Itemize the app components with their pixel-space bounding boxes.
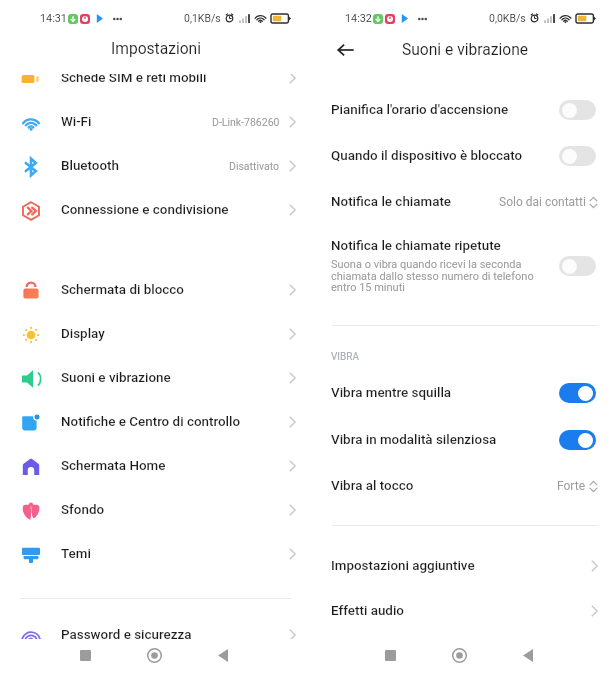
staticText: 14:31 [40, 12, 67, 25]
staticText: Pianifica l'orario d'accensione [331, 102, 509, 118]
staticText: Quando il dispositivo è bloccato [331, 148, 523, 164]
staticText: 0,0KB/s [489, 12, 526, 24]
staticText: Suoni e vibrazione [402, 41, 529, 59]
button[interactable]: Vibra al tocco [305, 463, 610, 509]
staticText: VIBRA [331, 351, 360, 363]
button[interactable]: Home [138, 639, 170, 671]
button[interactable]: Impostazioni aggiuntive [305, 543, 610, 588]
button[interactable]: Recents [374, 639, 406, 671]
button[interactable]: Toggle on [559, 430, 596, 450]
button[interactable]: Effetti audio [305, 588, 610, 633]
staticText: Suona o vibra quando ricevi la seconda c… [331, 258, 534, 294]
staticText: Schede SIM e reti mobili [61, 74, 207, 86]
staticText: 0,1KB/s [184, 12, 221, 24]
staticText: Effetti audio [331, 603, 404, 619]
staticText: Sfondo [61, 502, 105, 518]
staticText: Schermata Home [61, 458, 166, 474]
button[interactable]: Toggle off [559, 100, 596, 120]
button[interactable]: Wi-Fi [0, 100, 305, 144]
staticText: Bluetooth [61, 158, 119, 174]
staticText: Schermata di blocco [61, 282, 184, 298]
staticText: Impostazioni aggiuntive [331, 558, 475, 574]
staticText: Notifica le chiamate [331, 194, 452, 210]
button[interactable]: Display [0, 312, 305, 356]
staticText: Vibra mentre squilla [331, 385, 452, 401]
button[interactable]: Bluetooth [0, 144, 305, 188]
button[interactable]: Schermata di blocco [0, 268, 305, 312]
button[interactable]: Back [329, 34, 361, 66]
button[interactable]: Toggle on [559, 383, 596, 403]
staticText: Disattivato [229, 160, 280, 172]
staticText: Wi-Fi [61, 114, 92, 130]
button[interactable]: Suoni e vibrazione [0, 356, 305, 400]
staticText: Notifiche e Centro di controllo [61, 414, 241, 430]
button[interactable]: Home [443, 639, 475, 671]
button[interactable]: Sfondo [0, 488, 305, 532]
staticText: D-Link-786260 [212, 116, 280, 128]
button[interactable]: Password e sicurezza [0, 613, 305, 641]
button[interactable]: Pianifica l'orario d'accensione [305, 87, 610, 133]
button[interactable]: Back [207, 639, 239, 671]
button[interactable]: Notifiche e Centro di controllo [0, 400, 305, 444]
button[interactable]: Notifica le chiamate [305, 179, 610, 225]
button[interactable]: Vibra in modalità silenziosa [305, 416, 610, 463]
button[interactable]: Quando il dispositivo è bloccato [305, 133, 610, 179]
staticText: Solo dai contatti [499, 195, 586, 209]
staticText: Connessione e condivisione [61, 202, 229, 218]
staticText: 14:32 [345, 12, 372, 25]
button[interactable]: Schermata Home [0, 444, 305, 488]
staticText: Notifica le chiamate ripetute [331, 238, 501, 254]
button[interactable]: Toggle off [559, 146, 596, 166]
staticText: Impostazioni [111, 40, 202, 58]
button[interactable]: Connessione e condivisione [0, 188, 305, 232]
button[interactable]: Schede SIM e reti mobili [0, 74, 305, 100]
button[interactable]: Notifica le chiamate ripetute [305, 238, 610, 294]
staticText: Forte [557, 479, 586, 493]
staticText: Suoni e vibrazione [61, 370, 171, 386]
staticText: Temi [61, 546, 91, 562]
button[interactable]: Temi [0, 532, 305, 576]
button[interactable]: Back [512, 639, 544, 671]
staticText: Vibra al tocco [331, 478, 414, 494]
button[interactable]: Toggle off [559, 256, 596, 276]
button[interactable]: Recents [69, 639, 101, 671]
staticText: Display [61, 326, 105, 342]
button[interactable]: Vibra mentre squilla [305, 370, 610, 416]
staticText: Password e sicurezza [61, 627, 192, 641]
staticText: Vibra in modalità silenziosa [331, 432, 497, 448]
